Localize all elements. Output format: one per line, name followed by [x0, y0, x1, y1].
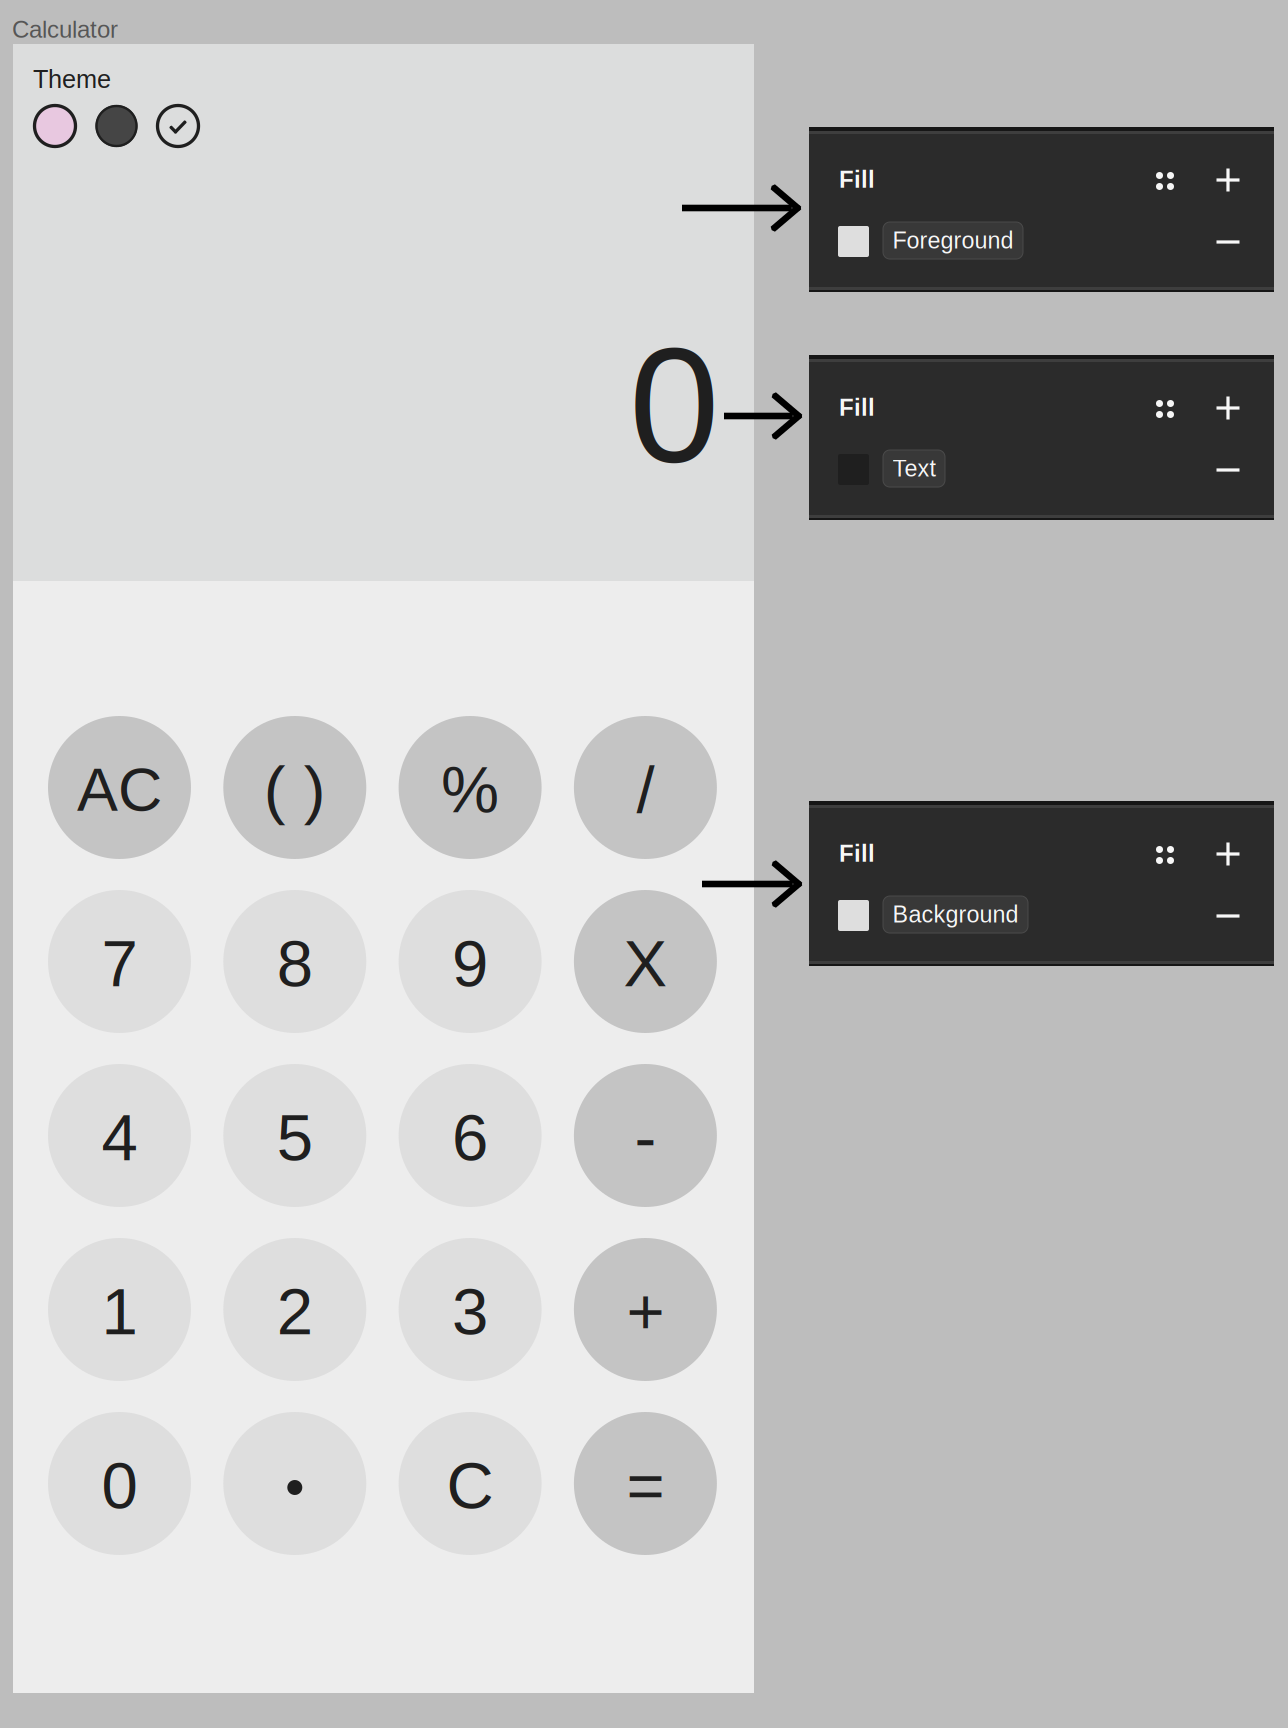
button[interactable]: Background: [883, 896, 1028, 933]
staticText: 5: [277, 1101, 313, 1174]
staticText: 4: [101, 1101, 137, 1174]
staticText: X: [623, 927, 667, 1000]
button[interactable]: Reorder fill: [1142, 158, 1188, 204]
button[interactable]: Pink theme: [31, 102, 79, 150]
button[interactable]: ( ): [223, 716, 366, 859]
button[interactable]: Decimal point: [223, 1412, 366, 1555]
button[interactable]: 6: [399, 1064, 542, 1207]
staticText: 7: [101, 927, 137, 1000]
staticText: Background: [892, 901, 1018, 928]
staticText: 3: [452, 1275, 488, 1348]
button[interactable]: Add fill: [1205, 157, 1251, 203]
staticText: =: [626, 1449, 664, 1522]
staticText: /: [636, 753, 654, 826]
staticText: 9: [452, 927, 488, 1000]
staticText: Fill: [839, 166, 875, 193]
staticText: Text: [892, 455, 935, 482]
button[interactable]: %: [399, 716, 542, 859]
staticText: 1: [101, 1275, 137, 1348]
staticText: 8: [277, 927, 313, 1000]
button[interactable]: 7: [48, 890, 191, 1033]
staticText: Foreground: [892, 227, 1013, 254]
button[interactable]: Dark theme: [92, 102, 140, 150]
staticText: 6: [452, 1101, 488, 1174]
staticText: Fill: [839, 840, 875, 867]
button[interactable]: Selected theme: [154, 102, 202, 150]
button[interactable]: 3: [399, 1238, 542, 1381]
staticText: C: [447, 1449, 494, 1522]
button[interactable]: 0: [48, 1412, 191, 1555]
button[interactable]: +: [574, 1238, 717, 1381]
button[interactable]: AC: [48, 716, 191, 859]
button[interactable]: Text: [883, 450, 945, 487]
button[interactable]: Foreground: [883, 222, 1023, 259]
button[interactable]: Remove fill: [1205, 219, 1251, 265]
staticText: 0: [629, 314, 719, 496]
button[interactable]: Reorder fill: [1142, 832, 1188, 878]
button[interactable]: C: [399, 1412, 542, 1555]
button[interactable]: 1: [48, 1238, 191, 1381]
staticText: 0: [101, 1449, 137, 1522]
button[interactable]: Reorder fill: [1142, 386, 1188, 432]
button[interactable]: 5: [223, 1064, 366, 1207]
button[interactable]: /: [574, 716, 717, 859]
staticText: ( ): [264, 753, 326, 826]
staticText: +: [626, 1275, 664, 1348]
staticText: 2: [277, 1275, 313, 1348]
button[interactable]: Remove fill: [1205, 447, 1251, 493]
staticText: Calculator: [12, 16, 118, 43]
staticText: Fill: [839, 394, 875, 421]
button[interactable]: 9: [399, 890, 542, 1033]
button[interactable]: 8: [223, 890, 366, 1033]
button[interactable]: Remove fill: [1205, 893, 1251, 939]
button[interactable]: X: [574, 890, 717, 1033]
button[interactable]: -: [574, 1064, 717, 1207]
button[interactable]: 4: [48, 1064, 191, 1207]
button[interactable]: Add fill: [1205, 831, 1251, 877]
staticText: %: [441, 753, 499, 826]
button[interactable]: 2: [223, 1238, 366, 1381]
button[interactable]: =: [574, 1412, 717, 1555]
staticText: Theme: [33, 65, 111, 93]
staticText: AC: [77, 755, 162, 824]
button[interactable]: Add fill: [1205, 385, 1251, 431]
staticText: -: [634, 1101, 656, 1174]
